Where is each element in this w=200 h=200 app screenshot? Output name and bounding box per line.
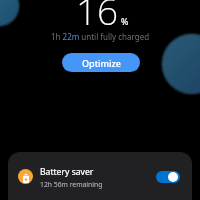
button[interactable]: Battery saver bbox=[8, 152, 192, 200]
staticText: Optimize bbox=[82, 57, 121, 69]
staticText: % bbox=[121, 15, 129, 27]
staticText: Battery saver bbox=[40, 166, 94, 178]
staticText: 16 bbox=[76, 0, 119, 35]
staticText: 12h 56m remaining bbox=[40, 180, 103, 189]
staticText: 1h 22m until fully charged bbox=[51, 31, 150, 42]
button[interactable]: Battery saver toggle bbox=[156, 171, 180, 183]
button[interactable]: Optimize bbox=[62, 53, 140, 72]
